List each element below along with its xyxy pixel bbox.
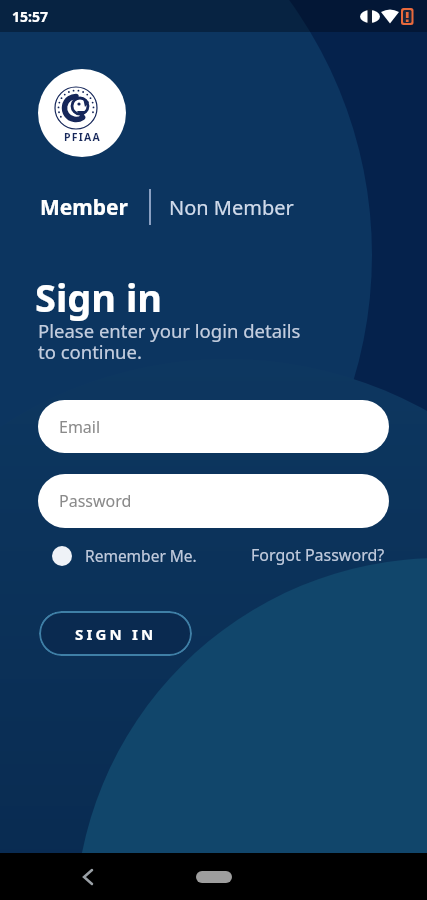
button[interactable]: Password: [38, 474, 389, 528]
staticText: Forgot Password?: [251, 544, 385, 566]
staticText: 15:57: [12, 7, 48, 26]
staticText: Password: [59, 490, 132, 512]
button[interactable]: SIGN IN: [39, 611, 192, 656]
staticText: Sign in: [35, 271, 162, 323]
staticText: SIGN IN: [75, 624, 157, 644]
button[interactable]: Forgot Password?: [251, 544, 385, 566]
staticText: Non Member: [169, 194, 294, 221]
button[interactable]: Member: [40, 193, 129, 222]
staticText: PFIAA: [64, 130, 101, 144]
staticText: Please enter your login details to conti…: [38, 318, 301, 364]
staticText: Email: [59, 416, 101, 438]
button[interactable]: [72, 863, 100, 891]
button[interactable]: [196, 871, 232, 883]
button[interactable]: Non Member: [169, 194, 294, 221]
button[interactable]: Remember Me.: [52, 545, 197, 566]
staticText: Remember Me.: [85, 545, 197, 566]
button[interactable]: Email: [38, 400, 389, 453]
staticText: Member: [40, 193, 129, 222]
